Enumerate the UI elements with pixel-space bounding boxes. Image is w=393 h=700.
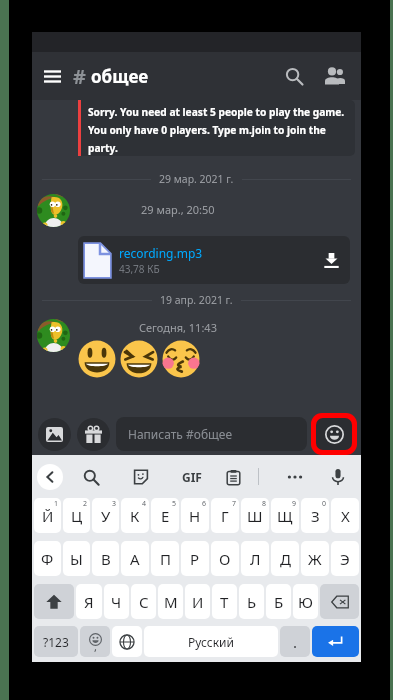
staticText: Sorry. You need at least 5 people to pla… xyxy=(88,105,353,155)
button[interactable]: Search xyxy=(77,463,105,491)
staticText: Ж xyxy=(308,549,322,569)
staticText: , xyxy=(94,639,97,654)
button[interactable]: Щ xyxy=(271,498,299,533)
button[interactable]: Members xyxy=(319,60,351,92)
staticText: 9 xyxy=(292,499,297,509)
button[interactable]: Д xyxy=(271,541,299,576)
staticText: 29 мар. 2021 г. xyxy=(159,172,234,186)
button[interactable]: Х xyxy=(331,498,359,533)
button[interactable]: Я xyxy=(76,584,102,619)
staticText: ?123 xyxy=(43,634,69,650)
button[interactable]: Ю xyxy=(293,584,318,619)
button[interactable]: И xyxy=(185,584,210,619)
button[interactable]: Emoji xyxy=(80,626,110,657)
button[interactable]: О xyxy=(211,541,239,576)
staticText: В xyxy=(101,549,111,569)
staticText: Ю xyxy=(298,592,313,612)
staticText: 29 мар., 20:50 xyxy=(141,202,215,217)
staticText: Ы xyxy=(70,549,83,569)
button[interactable]: Menu xyxy=(37,61,67,91)
button[interactable]: Shift xyxy=(34,584,74,619)
button[interactable]: В xyxy=(92,541,119,576)
button[interactable]: М xyxy=(158,584,183,619)
button[interactable]: Ь xyxy=(239,584,264,619)
button[interactable]: Gift xyxy=(77,418,110,451)
button[interactable]: Р xyxy=(181,541,209,576)
button[interactable]: Написать #общее xyxy=(116,417,307,451)
button[interactable]: Ц xyxy=(63,498,90,533)
staticText: З xyxy=(311,506,320,526)
staticText: # xyxy=(73,63,86,90)
button[interactable]: Enter xyxy=(312,626,359,657)
button[interactable]: Change language xyxy=(112,626,142,657)
staticText: Ф xyxy=(41,549,54,569)
staticText: У xyxy=(101,506,111,526)
button[interactable]: Download xyxy=(317,246,345,274)
button[interactable]: Backspace xyxy=(320,584,359,619)
button[interactable]: Г xyxy=(211,498,239,533)
staticText: . xyxy=(293,632,298,652)
staticText: Б xyxy=(274,592,284,612)
staticText: Сегодня, 11:43 xyxy=(139,320,217,335)
button[interactable]: Search xyxy=(278,60,310,92)
staticText: 2 xyxy=(83,499,88,509)
button[interactable]: Л xyxy=(241,541,269,576)
staticText: recording.mp3 xyxy=(119,245,203,261)
button[interactable]: Back xyxy=(37,464,63,490)
staticText: 19 апр. 2021 г. xyxy=(160,293,233,307)
button[interactable]: Русский xyxy=(144,626,278,657)
staticText: 8 xyxy=(262,499,267,509)
staticText: Е xyxy=(161,506,170,526)
button[interactable]: Ш xyxy=(241,498,269,533)
staticText: 3 xyxy=(112,499,117,509)
button[interactable]: Ч xyxy=(104,584,129,619)
staticText: общее xyxy=(91,65,149,88)
button[interactable]: У xyxy=(92,498,119,533)
button[interactable]: Ж xyxy=(301,541,329,576)
button[interactable]: А xyxy=(121,541,149,576)
button[interactable]: Т xyxy=(212,584,237,619)
staticText: 4 xyxy=(142,499,147,509)
staticText: Н xyxy=(189,506,201,526)
staticText: С xyxy=(139,592,149,612)
button[interactable]: Ф xyxy=(34,541,61,576)
staticText: Ш xyxy=(247,506,263,526)
staticText: Ь xyxy=(247,592,257,612)
staticText: П xyxy=(160,549,171,569)
button[interactable]: ?123 xyxy=(34,626,78,657)
button[interactable]: Attach image xyxy=(38,418,71,451)
staticText: Ч xyxy=(111,592,122,612)
button[interactable]: К xyxy=(121,498,149,533)
staticText: К xyxy=(130,506,140,526)
button[interactable]: Э xyxy=(331,541,359,576)
staticText: А xyxy=(130,549,140,569)
button[interactable]: GIF xyxy=(178,463,206,491)
button[interactable]: Clipboard xyxy=(219,463,247,491)
staticText: 43,78 КБ xyxy=(119,262,160,276)
button[interactable]: More options xyxy=(281,463,309,491)
staticText: Х xyxy=(341,506,350,526)
button[interactable]: Stickers xyxy=(127,463,155,491)
button[interactable]: Н xyxy=(181,498,209,533)
staticText: Л xyxy=(250,549,261,569)
button[interactable]: Ы xyxy=(63,541,90,576)
button[interactable]: С xyxy=(131,584,156,619)
staticText: Ц xyxy=(71,506,83,526)
staticText: Г xyxy=(221,506,229,526)
staticText: 5 xyxy=(172,499,177,509)
button[interactable]: Й xyxy=(34,498,61,533)
button[interactable]: Б xyxy=(266,584,291,619)
staticText: О xyxy=(219,549,231,569)
staticText: 1 xyxy=(54,499,59,509)
button[interactable]: recording.mp3 xyxy=(78,236,350,284)
staticText: Й xyxy=(42,506,54,526)
button[interactable]: Voice input xyxy=(324,463,352,491)
button[interactable]: Emoji picker xyxy=(316,418,352,450)
button[interactable]: . xyxy=(280,626,310,657)
staticText: Т xyxy=(220,592,229,612)
staticText: И xyxy=(192,592,204,612)
staticText: Написать #общее xyxy=(128,426,233,442)
button[interactable]: З xyxy=(301,498,329,533)
button[interactable]: Е xyxy=(151,498,179,533)
button[interactable]: П xyxy=(151,541,179,576)
